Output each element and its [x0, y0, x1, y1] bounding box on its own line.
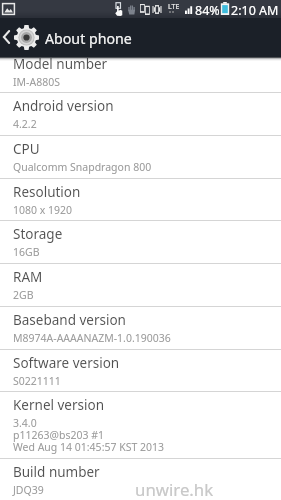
- staticText: Build number: [13, 463, 100, 481]
- staticText: 2:10 AM: [231, 2, 279, 19]
- staticText: 84%: [195, 2, 220, 19]
- staticText: Storage: [13, 225, 63, 243]
- button[interactable]: RAM: [0, 264, 281, 306]
- button[interactable]: Navigate up: [0, 18, 42, 56]
- staticText: unwire.hk: [135, 478, 214, 500]
- staticText: Android version: [13, 97, 114, 115]
- staticText: LTE: [168, 2, 180, 12]
- staticText: Qualcomm Snapdragon 800: [13, 160, 152, 174]
- staticText: p11263@bs203 #1: [13, 428, 104, 442]
- staticText: 4.2.2: [13, 117, 37, 131]
- staticText: 2GB: [13, 288, 34, 302]
- staticText: IM-A880S: [13, 75, 60, 89]
- staticText: JDQ39: [13, 483, 44, 497]
- staticText: Software version: [13, 354, 120, 372]
- button[interactable]: Kernel version: [0, 392, 281, 458]
- button[interactable]: Storage: [0, 221, 281, 263]
- staticText: Resolution: [13, 183, 81, 201]
- button[interactable]: Build number: [0, 459, 281, 500]
- staticText: Baseband version: [13, 311, 126, 329]
- staticText: Kernel version: [13, 396, 105, 414]
- button[interactable]: CPU: [0, 136, 281, 178]
- button[interactable]: Software version: [0, 350, 281, 392]
- staticText: RAM: [13, 268, 43, 286]
- button[interactable]: Model number: [0, 51, 281, 93]
- staticText: CPU: [13, 140, 40, 158]
- staticText: M8974A-AAAANAZM-1.0.190036: [13, 331, 171, 345]
- staticText: 16GB: [13, 245, 40, 259]
- staticText: Model number: [13, 55, 108, 73]
- button[interactable]: Android version: [0, 93, 281, 135]
- staticText: Wed Aug 14 01:45:57 KST 2013: [13, 440, 165, 454]
- staticText: 3.4.0: [13, 416, 37, 430]
- staticText: S0221111: [13, 374, 61, 388]
- button[interactable]: Baseband version: [0, 307, 281, 349]
- staticText: 1080 x 1920: [13, 203, 73, 217]
- staticText: About phone: [45, 29, 132, 48]
- button[interactable]: Resolution: [0, 179, 281, 221]
